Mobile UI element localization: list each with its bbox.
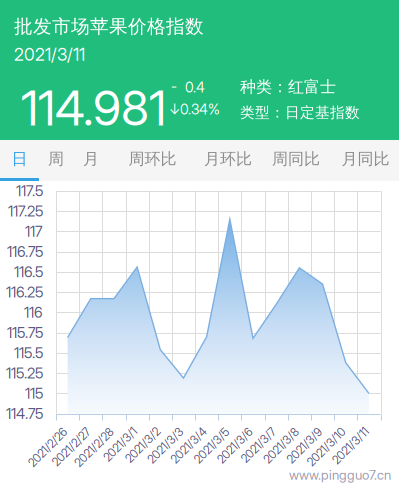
staticText: 115.5 [14, 344, 43, 362]
staticText: 2021/3/2 [114, 423, 158, 436]
button[interactable]: 月环比 [196, 140, 260, 181]
staticText: 月同比 [341, 149, 389, 169]
staticText: 种类：红富士 [240, 77, 336, 97]
button[interactable]: 周同比 [260, 140, 332, 181]
staticText: 116.5 [14, 263, 43, 281]
button[interactable]: 月 [73, 140, 109, 181]
staticText: 类型：日定基指数 [240, 104, 360, 122]
button[interactable]: 周环比 [109, 140, 196, 181]
staticText: 周环比 [128, 149, 176, 169]
staticText: 2021/2/28 [62, 423, 112, 436]
staticText: 117 [25, 222, 43, 240]
staticText: 2021/3/3 [136, 423, 181, 436]
staticText: 2021/2/27 [40, 423, 89, 436]
staticText: 115.25 [6, 364, 43, 382]
staticText: 2021/2/26 [16, 423, 66, 436]
staticText: 116 [24, 304, 43, 321]
staticText: 周 [48, 149, 64, 169]
staticText: 批发市场苹果价格指数 [14, 15, 204, 38]
staticText: 114.981 [21, 79, 166, 137]
staticText: www.pingguo7.cn [289, 467, 391, 483]
staticText: 月环比 [204, 149, 252, 169]
staticText: 115 [25, 385, 43, 402]
staticText: ↓0.34% [169, 101, 220, 118]
staticText: 2021/3/5 [183, 423, 228, 436]
staticText: 2021/3/10 [295, 423, 344, 436]
staticText: 2021/3/6 [206, 423, 251, 436]
staticText: 日 [11, 149, 27, 169]
staticText: 116.75 [7, 243, 43, 260]
staticText: 114.75 [6, 405, 43, 422]
staticText: 周同比 [272, 149, 320, 169]
staticText: 2021/3/9 [276, 423, 321, 436]
staticText: 117.5 [16, 182, 43, 200]
button[interactable]: 月同比 [332, 140, 399, 181]
staticText: 117.25 [8, 202, 43, 220]
staticText: 2021/3/11 [14, 44, 85, 65]
staticText: 2021/3/7 [230, 423, 274, 436]
staticText: - 0.4 [171, 79, 205, 96]
staticText: 2021/3/1 [93, 423, 135, 436]
staticText: 2021/3/4 [160, 423, 205, 436]
staticText: 116.25 [6, 283, 43, 301]
staticText: 2021/3/8 [252, 423, 297, 436]
staticText: 115.75 [7, 324, 43, 341]
button[interactable]: 周 [39, 140, 73, 181]
button[interactable]: 日 [0, 140, 39, 181]
staticText: 2021/3/11 [321, 423, 367, 436]
staticText: 月 [83, 149, 99, 169]
